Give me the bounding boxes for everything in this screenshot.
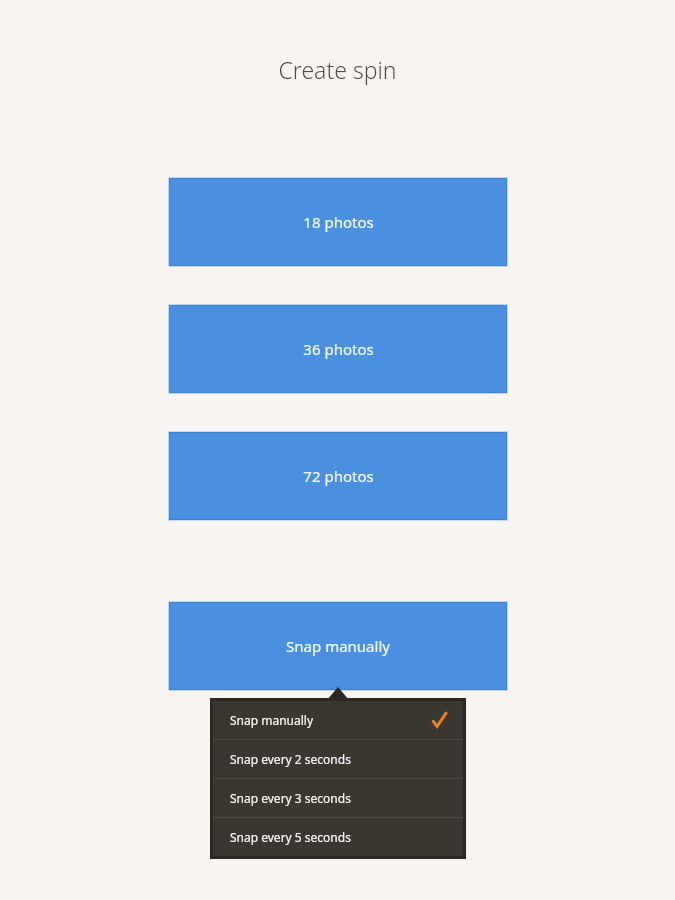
button[interactable]: Snap manually <box>170 603 506 689</box>
button[interactable]: 36 photos <box>170 306 506 392</box>
staticText: Snap manually <box>230 712 314 728</box>
button[interactable]: Snap every 5 seconds <box>213 818 463 856</box>
staticText: Snap every 2 seconds <box>230 751 351 767</box>
staticText: 72 photos <box>303 466 374 486</box>
button[interactable]: Snap every 2 seconds <box>213 740 463 778</box>
button[interactable]: Snap every 3 seconds <box>213 779 463 817</box>
staticText: Snap every 5 seconds <box>230 829 351 845</box>
staticText: Snap manually <box>286 636 390 656</box>
button[interactable]: 72 photos <box>170 433 506 519</box>
staticText: Snap every 3 seconds <box>230 790 351 806</box>
staticText: Create spin <box>278 54 397 85</box>
button[interactable]: Snap manually <box>213 701 463 739</box>
other: Selected <box>432 711 447 729</box>
staticText: 18 photos <box>303 212 374 232</box>
staticText: 36 photos <box>303 339 374 359</box>
button[interactable]: 18 photos <box>170 179 506 265</box>
